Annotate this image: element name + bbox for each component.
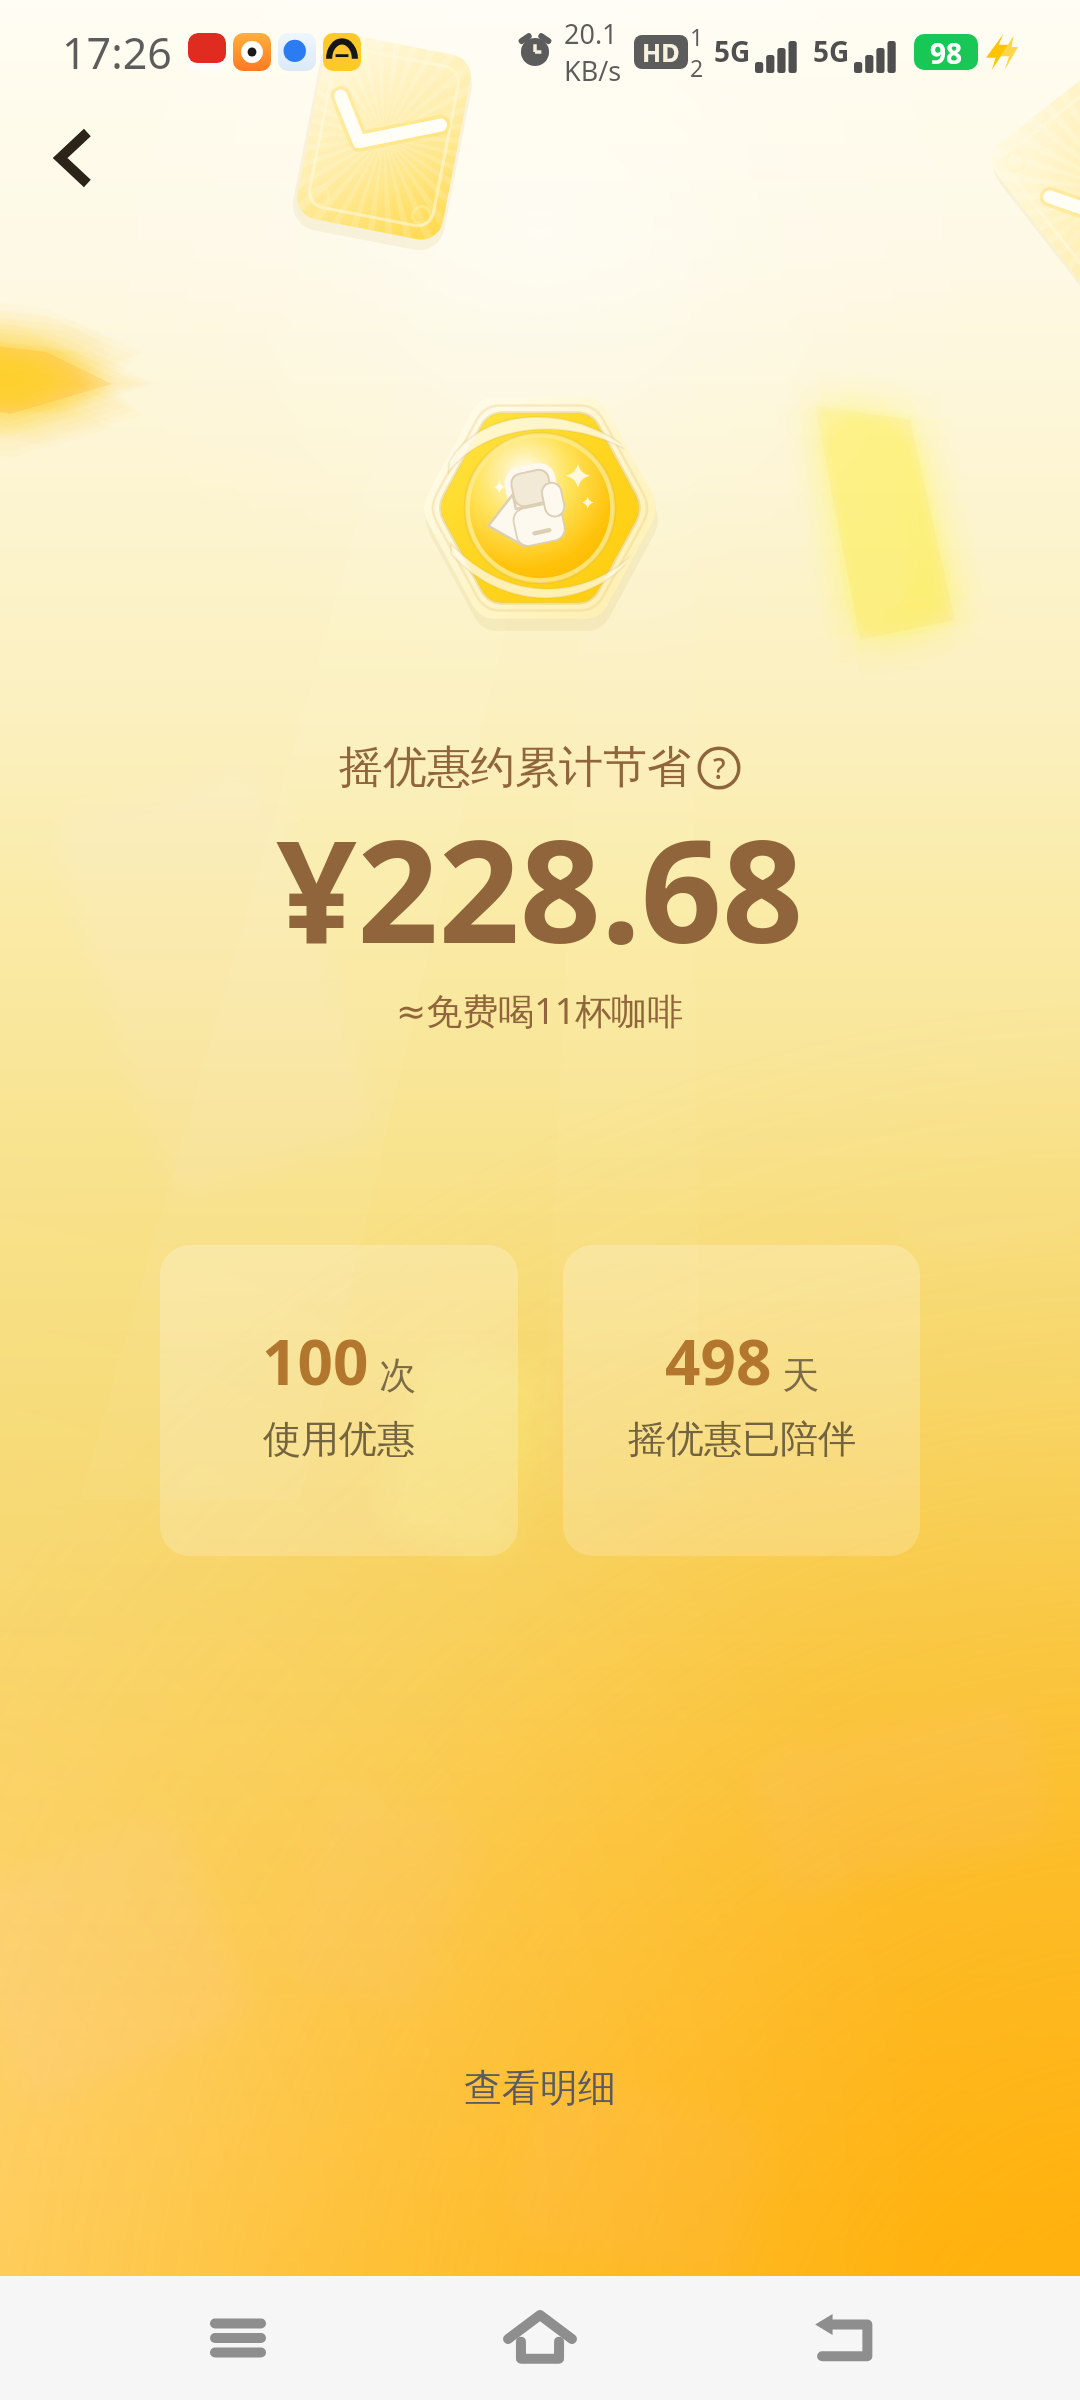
button[interactable]: 摇优惠约累计节省 [339, 740, 741, 795]
staticText: ? [713, 749, 726, 787]
staticText: ¥228.68 [276, 791, 804, 984]
staticText: 摇优惠已陪伴 [628, 1415, 856, 1463]
staticText: 2 [690, 52, 704, 83]
staticText: ≈免费喝11杯咖啡 [396, 986, 684, 1035]
staticText: HD [642, 35, 680, 69]
staticText: 查看明细 [464, 2064, 616, 2112]
staticText: 使用优惠 [263, 1415, 415, 1463]
staticText: 天 [782, 1352, 819, 1399]
staticText: 1 [690, 21, 704, 52]
button[interactable]: 100 [160, 1245, 518, 1556]
staticText: 次 [379, 1352, 416, 1399]
staticText: 20.1 [564, 15, 618, 52]
staticText: 98 [930, 34, 963, 70]
staticText: 498 [665, 1319, 772, 1403]
staticText: KB/s [564, 52, 622, 89]
button[interactable]: Recent apps [173, 2276, 303, 2400]
button[interactable]: Back [778, 2276, 908, 2400]
button[interactable]: 498 [563, 1245, 920, 1556]
button[interactable]: Back [24, 114, 112, 202]
staticText: 5G [714, 32, 751, 70]
button[interactable]: 查看明细 [434, 2050, 646, 2126]
button[interactable]: Home [475, 2276, 605, 2400]
staticText: 5G [813, 32, 850, 70]
staticText: 17:26 [62, 23, 172, 82]
staticText: 摇优惠约累计节省 [339, 740, 691, 795]
staticText: 100 [262, 1319, 369, 1403]
